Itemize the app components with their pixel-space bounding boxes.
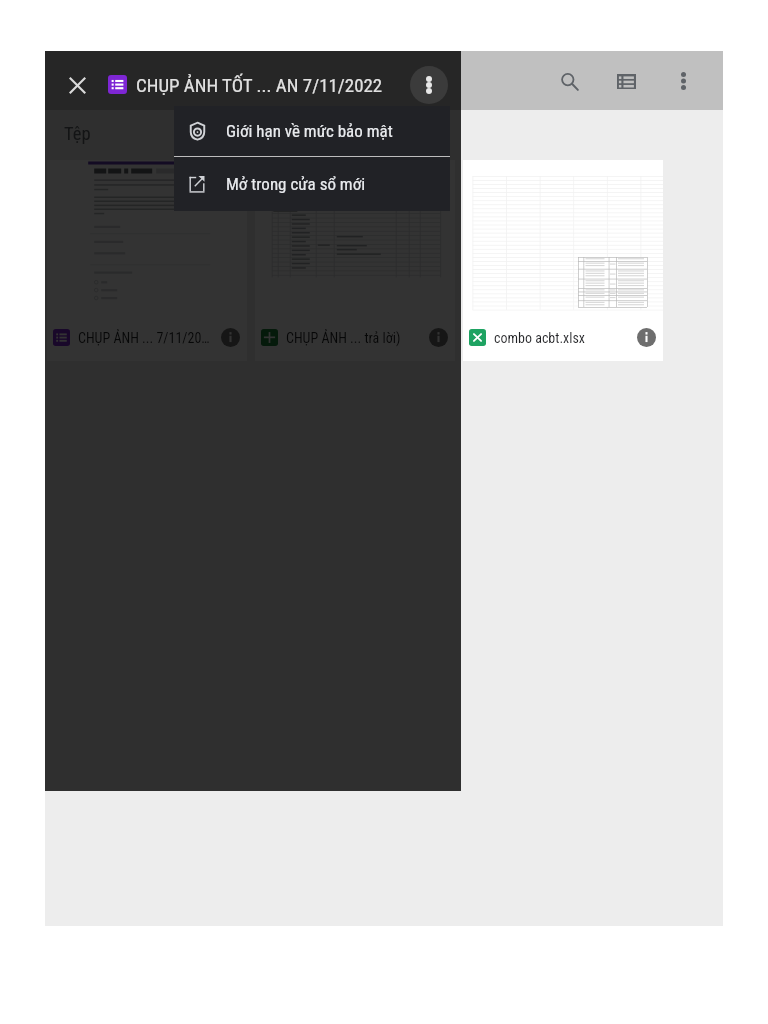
button[interactable]: More options [660,58,706,104]
staticText: CHỤP ẢNH TỐT ... AN 7/11/2022 [136,74,383,96]
staticText: combo acbt.xlsx [494,330,631,346]
button[interactable]: File information [221,328,240,347]
button[interactable]: CHỤP ẢNH ... trả lời) [255,160,455,361]
button[interactable]: Close [55,63,99,107]
button[interactable]: CHỤP ẢNH ... 7/11/2022 [47,160,247,361]
staticText: Mở trong cửa sổ mới [226,174,366,194]
button[interactable]: Mở trong cửa sổ mới [174,157,450,211]
button[interactable]: File information [429,328,448,347]
button[interactable]: Search [546,58,592,104]
button[interactable]: File information [637,328,656,347]
button[interactable]: Switch to list view [603,58,649,104]
staticText: CHỤP ẢNH ... trả lời) [286,330,423,346]
staticText: CHỤP ẢNH ... 7/11/2022 [78,330,215,346]
staticText: Giới hạn về mức bảo mật [226,121,393,141]
button[interactable]: combo acbt.xlsx [463,160,663,361]
staticText: Tệp [64,123,91,145]
button[interactable]: Giới hạn về mức bảo mật [174,106,450,156]
button[interactable]: More options [410,66,448,104]
